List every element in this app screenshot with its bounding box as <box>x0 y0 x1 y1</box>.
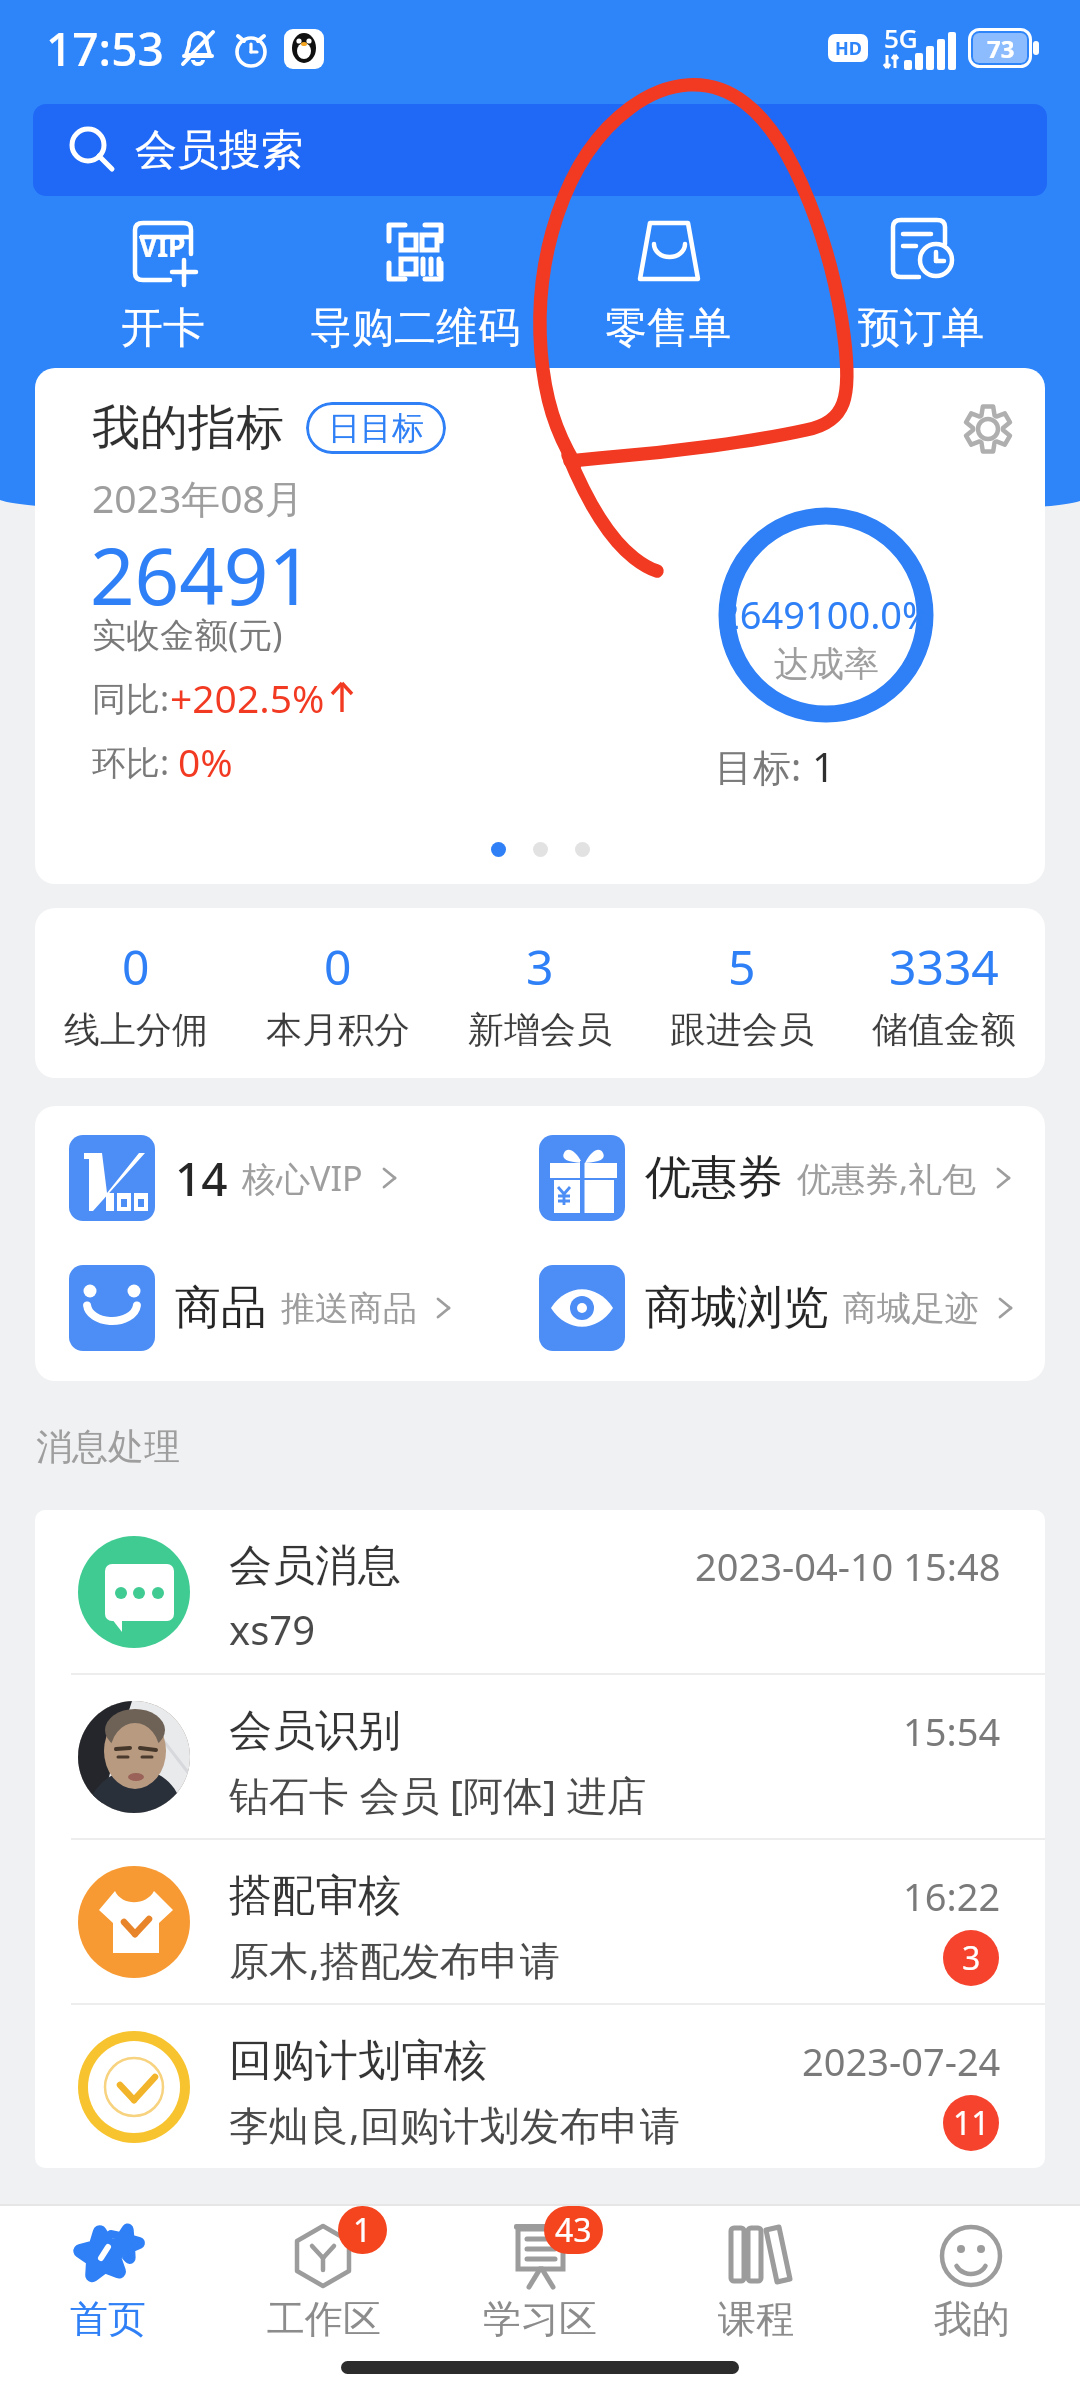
staticText: HD <box>835 36 862 61</box>
staticText: 工作区 <box>267 2295 381 2343</box>
staticText: 零售单 <box>605 302 731 355</box>
staticText: 0% <box>178 735 233 788</box>
staticText: 商城足迹 <box>843 1287 979 1330</box>
staticText: 预订单 <box>858 302 984 355</box>
staticText: 回购计划审核 <box>229 2034 487 2088</box>
staticText: 5 <box>728 934 756 999</box>
staticText: 首页 <box>70 2295 146 2343</box>
staticText: 线上分佣 <box>64 1007 208 1052</box>
staticText: 我的指标 <box>92 398 284 458</box>
staticText: 73 <box>987 32 1015 65</box>
button[interactable]: 设置 <box>958 399 1018 459</box>
button[interactable]: 回购计划审核 <box>35 2005 1045 2168</box>
staticText: 环比: <box>92 739 178 785</box>
staticText: 2023-07-24 <box>802 2035 1001 2087</box>
staticText: 原木,搭配发布申请 <box>229 1932 560 1987</box>
button[interactable]: VIP <box>37 212 289 357</box>
staticText: 日目标 <box>328 408 424 448</box>
staticText: 导购二维码 <box>310 302 520 355</box>
button[interactable]: 商城浏览 <box>539 1262 1019 1354</box>
staticText: 0 <box>122 934 150 999</box>
button[interactable]: 0 <box>35 934 237 1052</box>
staticText: 搭配审核 <box>229 1869 401 1923</box>
staticText: 16:22 <box>903 1870 1001 1922</box>
staticText: 达成率 <box>774 642 879 686</box>
staticText: 开卡 <box>121 302 205 355</box>
button[interactable]: 搭配审核 <box>35 1840 1045 2003</box>
staticText: 11 <box>953 2101 990 2145</box>
button[interactable]: 我的 <box>864 2206 1080 2343</box>
staticText: 1 <box>353 2208 372 2252</box>
button[interactable]: 零售单 <box>541 212 794 357</box>
staticText: 消息处理 <box>36 1424 180 1469</box>
staticText: 本月积分 <box>266 1007 410 1052</box>
staticText: 1 <box>812 739 835 793</box>
staticText: 李灿良,回购计划发布申请 <box>229 2097 680 2152</box>
staticText: 3 <box>962 1936 981 1980</box>
staticText: 学习区 <box>483 2295 597 2343</box>
button[interactable]: 3334 <box>843 934 1045 1052</box>
staticText: 推送商品 <box>281 1287 417 1330</box>
staticText: 商品 <box>175 1279 267 1337</box>
button[interactable]: 导购二维码 <box>289 212 541 357</box>
button[interactable]: 14 <box>69 1132 403 1224</box>
button[interactable]: 课程 <box>648 2206 864 2343</box>
button[interactable]: 5 <box>641 934 843 1052</box>
button[interactable]: 优惠券 <box>539 1132 1017 1224</box>
staticText: 3 <box>526 934 554 999</box>
staticText: 会员搜索 <box>135 124 303 177</box>
button[interactable]: 会员识别 <box>35 1675 1045 1838</box>
button[interactable]: 0 <box>237 934 439 1052</box>
staticText: 优惠券,礼包 <box>797 1155 977 1201</box>
staticText: 2023年08月 <box>92 471 304 524</box>
staticText: 目标: <box>715 740 812 792</box>
button[interactable]: 会员搜索 <box>33 104 1047 196</box>
button[interactable]: 43 <box>432 2206 648 2343</box>
staticText: 15:54 <box>903 1705 1001 1757</box>
staticText: 钻石卡 会员 [阿体] 进店 <box>229 1767 647 1822</box>
staticText: 会员识别 <box>229 1704 401 1758</box>
button[interactable]: 商品 <box>69 1262 457 1354</box>
staticText: 商城浏览 <box>645 1279 829 1337</box>
staticText: 会员消息 <box>229 1539 401 1593</box>
staticText: 5G <box>884 20 918 55</box>
staticText: +202.5% <box>170 671 325 724</box>
staticText: 跟进会员 <box>670 1007 814 1052</box>
staticText: 43 <box>555 2208 592 2252</box>
staticText: 新增会员 <box>468 1007 612 1052</box>
staticText: 2649100.0% <box>718 588 934 640</box>
staticText: 同比: <box>92 675 170 721</box>
staticText: 课程 <box>718 2295 794 2343</box>
button[interactable]: 3 <box>439 934 641 1052</box>
staticText: 储值金额 <box>872 1007 1016 1052</box>
staticText: 实收金额(元) <box>92 611 283 657</box>
staticText: 14 <box>175 1147 228 1210</box>
button[interactable]: 1 <box>216 2206 432 2343</box>
staticText: 3334 <box>889 934 999 999</box>
staticText: 优惠券 <box>645 1149 783 1207</box>
staticText: 我的 <box>934 2295 1010 2343</box>
button[interactable]: 会员消息 <box>35 1510 1045 1673</box>
staticText: 0 <box>324 934 352 999</box>
button[interactable]: 首页 <box>0 2206 216 2343</box>
staticText: xs79 <box>229 1602 316 1656</box>
staticText: VIP <box>139 227 186 265</box>
button[interactable]: 日目标 <box>306 402 446 454</box>
button[interactable]: 预订单 <box>794 212 1047 357</box>
staticText: 核心VIP <box>242 1155 363 1201</box>
staticText: 26491 <box>90 522 314 628</box>
staticText: 17:53 <box>46 17 164 80</box>
staticText: 2023-04-10 15:48 <box>695 1540 1001 1592</box>
